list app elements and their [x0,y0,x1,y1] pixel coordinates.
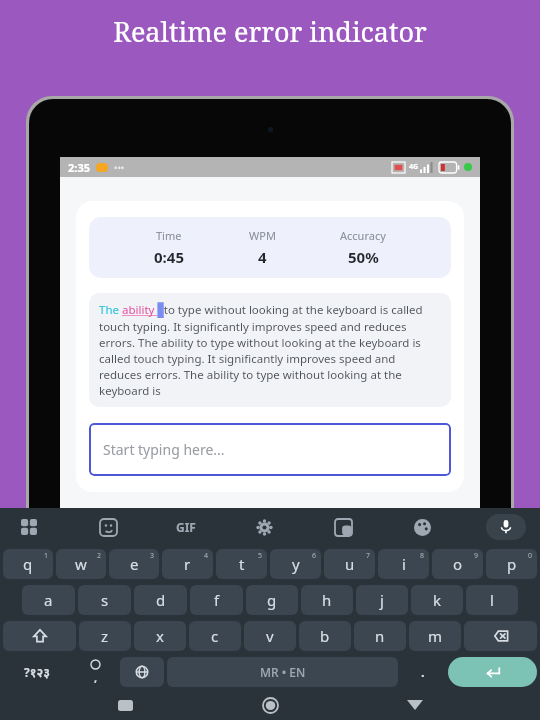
staticText: Time [156,228,182,243]
staticText: f [214,590,220,610]
button[interactable]: Hide keyboard [395,690,435,720]
button[interactable]: w [56,549,106,579]
staticText: t [239,554,245,574]
staticText: k [433,590,442,610]
button[interactable]: y [270,549,321,579]
button[interactable]: . [401,657,445,687]
button[interactable]: k [411,585,463,615]
staticText: 0:45 [154,247,184,267]
staticText: WPM [249,228,276,243]
staticText: y [292,554,300,574]
button[interactable]: n [354,621,406,651]
staticText: 50% [348,247,379,267]
button[interactable]: Recents [105,690,145,720]
staticText: m [428,626,443,646]
staticText: Realtime error indicator [0,13,540,50]
staticText: z [101,626,109,646]
button[interactable]: o [432,549,483,579]
staticText: p [507,554,517,574]
button[interactable]: Settings [249,512,279,542]
button[interactable]: MR • EN [167,657,398,687]
button[interactable]: Enter [448,657,537,687]
button[interactable]: s [78,585,131,615]
button[interactable]: f [190,585,243,615]
staticText: 2:35 [68,160,90,175]
staticText: v [266,626,274,646]
staticText: 7 [366,551,371,561]
button[interactable]: t [216,549,267,579]
staticText: 0 [528,551,533,561]
button[interactable]: a [22,585,75,615]
button[interactable]: Home [250,690,290,720]
button[interactable]: x [134,621,186,651]
staticText: 1 [44,551,49,561]
button[interactable]: Language [120,657,164,687]
button[interactable]: d [134,585,187,615]
staticText: MR • EN [260,664,306,680]
button[interactable]: h [301,585,353,615]
staticText: s [101,590,109,610]
staticText: , [94,670,98,685]
staticText: The ability |to type without looking at … [99,302,441,398]
staticText: w [75,554,87,574]
staticText: Start typing here... [103,440,225,459]
button[interactable]: q [3,549,53,579]
button[interactable]: e [109,549,159,579]
staticText: c [211,626,219,646]
staticText: ?१२३ [24,664,50,680]
button[interactable]: j [356,585,408,615]
staticText: b [320,626,330,646]
staticText: n [375,626,385,646]
staticText: Accuracy [340,228,386,243]
staticText: h [322,590,332,610]
button[interactable]: GIF [172,515,200,539]
staticText: e [130,554,139,574]
staticText: i [402,554,406,574]
button[interactable]: Emoji [73,657,117,687]
staticText: 4 [204,551,209,561]
staticText: 8 [420,551,425,561]
button[interactable]: m [409,621,461,651]
staticText: ••• [114,161,125,173]
staticText: j [380,590,384,610]
button[interactable]: Stickers [93,512,123,542]
staticText: 9 [474,551,479,561]
staticText: r [184,554,191,574]
staticText: . [421,663,425,681]
staticText: 2 [97,551,102,561]
button[interactable]: Voice input [486,514,526,540]
staticText: x [156,626,164,646]
button[interactable]: Shift [3,621,76,651]
button[interactable]: p [486,549,537,579]
button[interactable]: c [189,621,241,651]
staticText: l [490,590,494,610]
staticText: d [156,590,166,610]
button[interactable]: Translate [328,512,358,542]
staticText: g [267,590,277,610]
button[interactable]: Backspace [464,621,537,651]
staticText: 4 [258,247,267,267]
button[interactable]: z [79,621,131,651]
staticText: 5 [258,551,263,561]
button[interactable]: Start typing here... [89,423,451,476]
button[interactable]: i [378,549,429,579]
staticText: q [23,554,33,574]
button[interactable]: Themes [407,512,437,542]
staticText: u [345,554,355,574]
staticText: 4G [409,162,419,172]
button[interactable]: v [244,621,296,651]
button[interactable]: b [299,621,351,651]
staticText: 3 [150,551,155,561]
button[interactable]: l [466,585,518,615]
staticText: o [453,554,463,574]
button[interactable]: r [162,549,213,579]
button[interactable]: u [324,549,375,579]
button[interactable]: Apps [14,512,44,542]
staticText: 6 [312,551,317,561]
staticText: GIF [176,519,196,535]
button[interactable]: ?१२३ [3,657,70,687]
button[interactable]: g [246,585,298,615]
staticText: a [44,590,53,610]
